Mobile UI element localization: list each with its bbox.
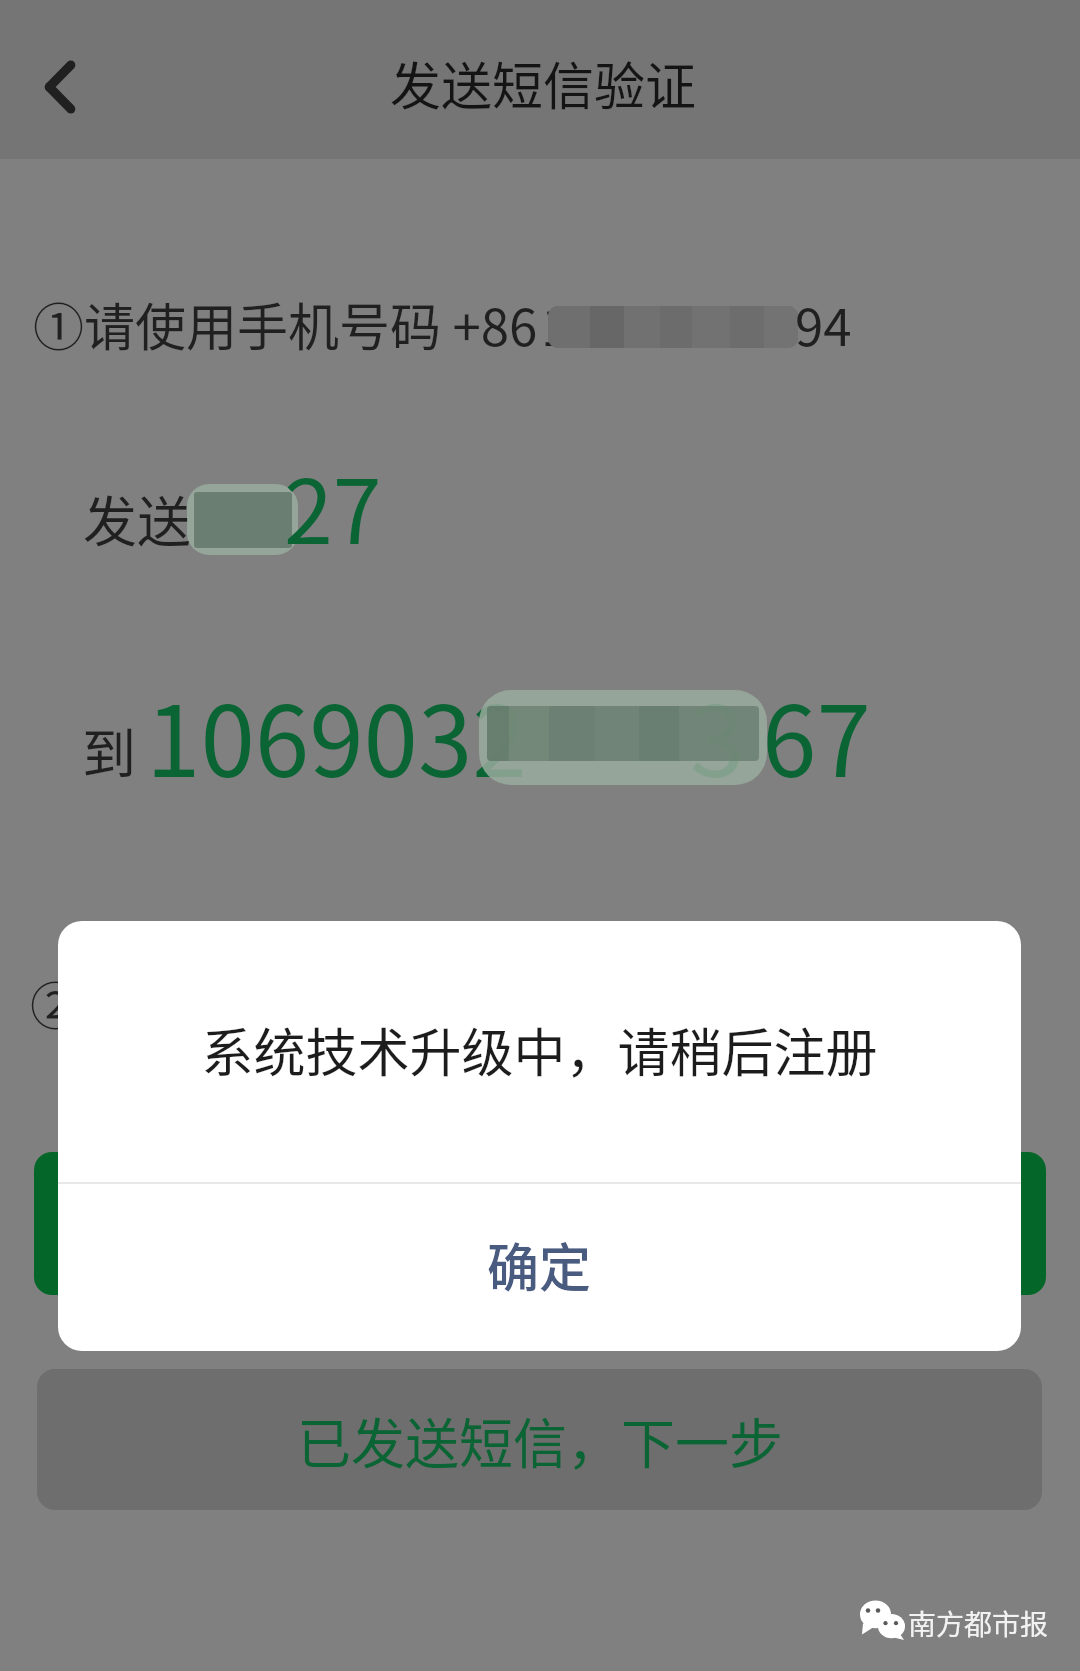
staticText: 已发送短信，下一步 xyxy=(297,1401,783,1479)
staticText: 94 xyxy=(795,287,852,361)
button[interactable]: Back xyxy=(23,29,95,145)
staticText: ② xyxy=(30,966,82,1040)
staticText: 确定 xyxy=(487,1227,592,1302)
staticText: 1069032 xyxy=(146,663,527,805)
button[interactable]: 已发送短信，下一步 xyxy=(37,1369,1042,1510)
staticText: 3 xyxy=(690,663,745,805)
staticText: 到 xyxy=(82,711,136,789)
staticText: 发送 xyxy=(83,479,191,557)
staticText: ①请使用手机号码 +86 xyxy=(33,287,538,361)
staticText: 27 xyxy=(284,442,382,569)
staticText: 南方都市报 xyxy=(908,1603,1049,1644)
staticText: 发送短信验证 xyxy=(390,46,697,120)
staticText: 67 xyxy=(762,663,871,805)
button[interactable]: 发送短信 xyxy=(34,1152,1046,1295)
button[interactable]: 确定 xyxy=(58,1181,1021,1348)
staticText: 1234567 xyxy=(541,287,740,361)
staticText: 系统技术升级中，请稍后注册 xyxy=(201,1012,878,1087)
